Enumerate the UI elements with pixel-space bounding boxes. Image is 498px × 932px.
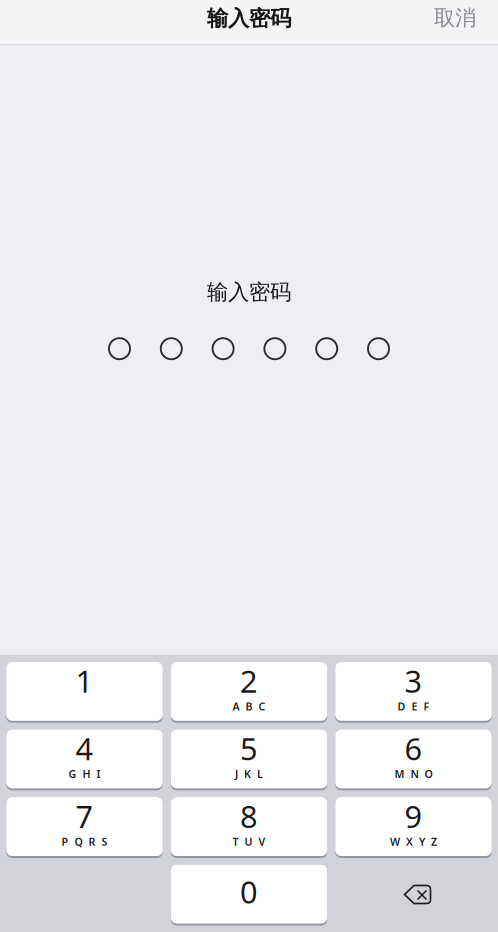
staticText: 输入密码 [207, 5, 291, 32]
button[interactable]: 6 [335, 729, 492, 790]
staticText: 8 [240, 796, 258, 836]
button[interactable]: 4 [6, 729, 163, 790]
button[interactable]: 取消 [422, 0, 488, 37]
staticText: P Q R S [61, 834, 107, 849]
staticText: A B C [232, 699, 265, 713]
staticText: 7 [75, 796, 93, 836]
staticText: 1 [75, 660, 93, 701]
staticText: 0 [240, 871, 258, 912]
button[interactable]: Delete [335, 864, 492, 925]
staticText: M N O [394, 767, 432, 781]
button[interactable]: 9 [335, 797, 492, 858]
staticText: T U V [232, 834, 265, 849]
staticText: W X Y Z [390, 834, 437, 849]
staticText: 输入密码 [207, 279, 291, 305]
button[interactable]: 7 [6, 797, 163, 858]
button[interactable]: 2 [171, 662, 327, 723]
staticText: 5 [240, 728, 258, 769]
button[interactable]: 5 [171, 729, 327, 790]
button[interactable]: 0 [171, 864, 327, 925]
staticText: 6 [404, 728, 422, 769]
staticText: D E F [397, 699, 429, 713]
staticText: J K L [235, 767, 263, 781]
button[interactable]: 1 [6, 662, 163, 723]
button[interactable]: 8 [171, 797, 327, 858]
staticText: 取消 [434, 5, 476, 31]
staticText: 2 [240, 660, 258, 701]
staticText: 4 [75, 728, 93, 769]
staticText: 9 [404, 796, 422, 836]
button[interactable]: 3 [335, 662, 492, 723]
staticText: G H I [68, 767, 100, 781]
staticText: 3 [404, 660, 422, 701]
